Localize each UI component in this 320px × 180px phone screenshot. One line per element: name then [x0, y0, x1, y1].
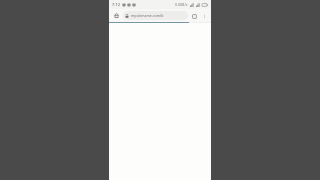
- staticText: 7:12: [112, 2, 120, 7]
- button[interactable]: Tabs: [190, 12, 198, 20]
- staticText: mysitename.com/b: [131, 13, 164, 18]
- button[interactable]: More options: [200, 12, 208, 20]
- staticText: 0.0KB/s: [175, 2, 188, 7]
- button[interactable]: mysitename.com/b: [123, 11, 188, 20]
- button[interactable]: Home: [112, 11, 121, 20]
